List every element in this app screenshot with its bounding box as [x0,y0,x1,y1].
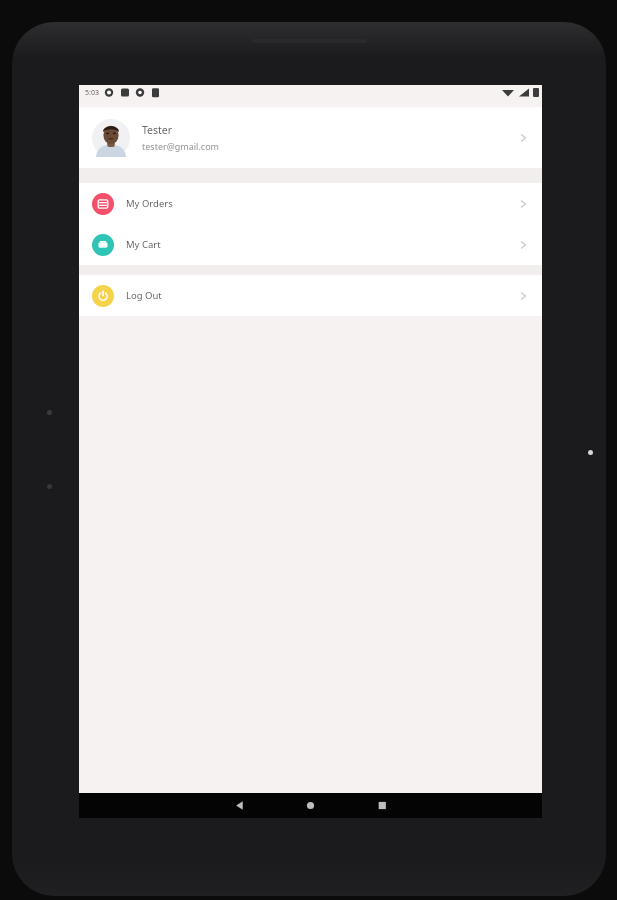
staticText: My Orders [126,197,173,210]
button[interactable]: Tester [79,107,542,168]
staticText: Log Out [126,289,162,302]
staticText: My Cart [126,238,161,251]
staticText: 5:03 [85,88,99,98]
staticText: Tester [142,123,173,137]
button[interactable]: My Orders [79,183,542,224]
button[interactable]: Log Out [79,275,542,316]
button[interactable]: My Cart [79,224,542,265]
staticText: tester@gmail.com [142,140,220,152]
